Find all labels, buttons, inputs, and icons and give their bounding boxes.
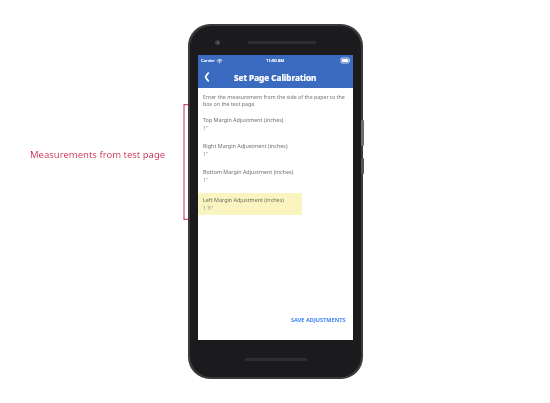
button[interactable]: Top Margin Adjustment (inches) bbox=[203, 116, 348, 132]
button[interactable]: SAVE ADJUSTMENTS bbox=[284, 313, 353, 327]
button[interactable]: Bottom Margin Adjustment (inches) bbox=[203, 168, 348, 184]
staticText: Bottom Margin Adjustment (inches) bbox=[203, 168, 294, 175]
button[interactable]: Left Margin Adjustment (inches) bbox=[203, 196, 299, 212]
staticText: SAVE ADJUSTMENTS bbox=[291, 316, 346, 324]
staticText: 1" bbox=[203, 151, 208, 158]
staticText: 1" bbox=[203, 125, 208, 132]
button[interactable]: Back bbox=[198, 66, 216, 88]
staticText: Left Margin Adjustment (inches) bbox=[203, 196, 284, 203]
staticText: Enter the measurement from the side of t… bbox=[203, 93, 348, 107]
staticText: Carrier bbox=[201, 58, 215, 64]
staticText: Set Page Calibration bbox=[234, 72, 317, 83]
staticText: Top Margin Adjustment (inches) bbox=[203, 116, 284, 123]
staticText: 1 ½" bbox=[203, 205, 214, 212]
staticText: Right Margin Adjustment (inches) bbox=[203, 142, 288, 149]
staticText: 1" bbox=[203, 177, 208, 184]
staticText: 11:00 AM bbox=[266, 58, 285, 64]
staticText: Measurements from test page bbox=[30, 148, 166, 161]
button[interactable]: Measurements from test page bbox=[30, 148, 180, 161]
button[interactable]: Right Margin Adjustment (inches) bbox=[203, 142, 348, 158]
